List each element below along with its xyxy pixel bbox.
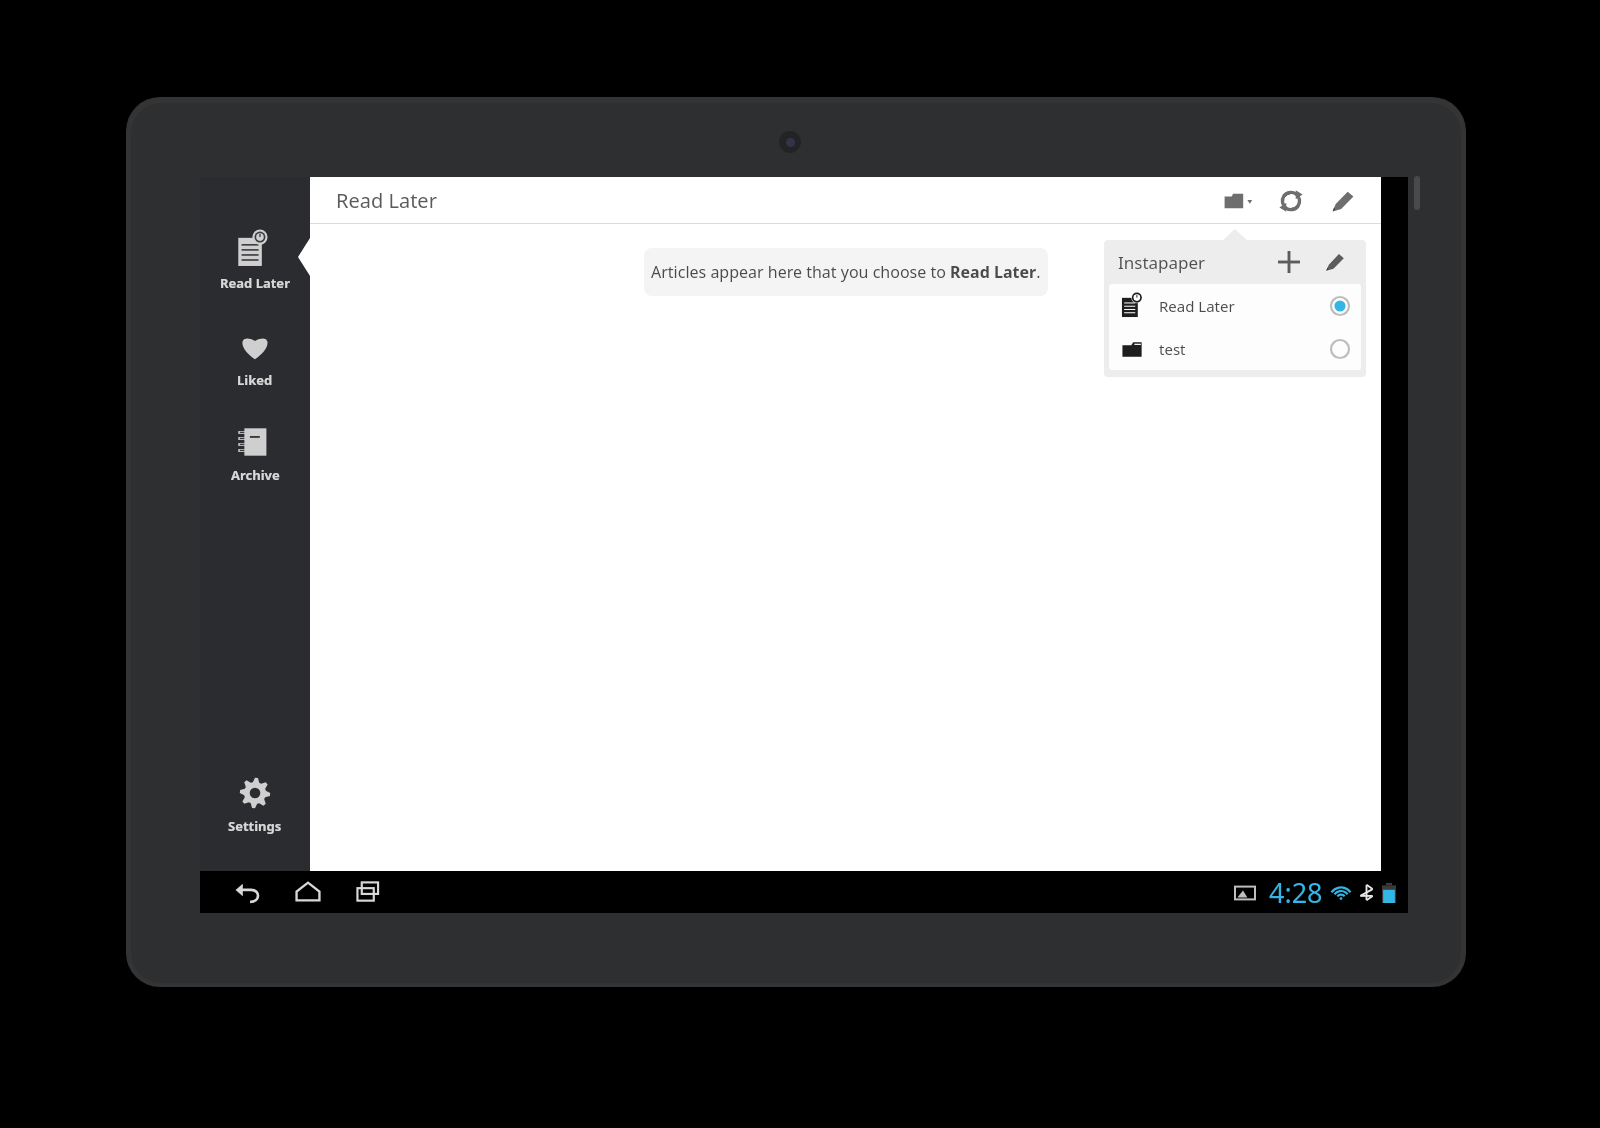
button[interactable]: Edit [1317,179,1369,223]
button[interactable]: Back [218,871,278,913]
button[interactable]: Home [278,871,338,913]
button[interactable]: Folders [1213,179,1265,223]
staticText: Read Later [336,187,437,214]
button[interactable]: Articles appear here that you choose to … [644,248,1048,296]
button[interactable]: Archive [200,417,310,490]
staticText: Articles appear here that you choose to … [651,261,1041,283]
staticText: Read Later [220,274,290,292]
staticText: Liked [237,371,273,389]
button[interactable]: Read Later [200,225,310,298]
button[interactable]: Settings [200,768,310,841]
button[interactable]: Liked [200,322,310,395]
staticText: Instapaper [1118,251,1206,274]
staticText: 4:28 [1269,874,1323,911]
button[interactable]: Refresh [1265,179,1317,223]
button[interactable]: Add folder [1266,240,1312,284]
staticText: test [1159,339,1186,359]
staticText: Read Later [1159,296,1235,316]
button[interactable]: test [1109,327,1361,370]
button[interactable]: Edit folders [1312,240,1358,284]
staticText: Archive [231,466,280,484]
button[interactable]: Read Later [1109,284,1361,327]
button[interactable]: Recents [338,871,398,913]
staticText: Settings [228,817,282,835]
